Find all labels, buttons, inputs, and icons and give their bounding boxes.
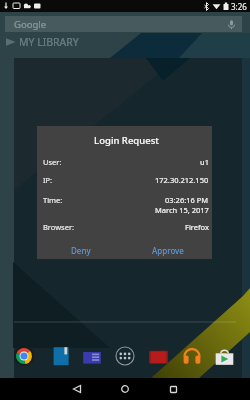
other: Voice search bbox=[226, 19, 237, 30]
staticText: IP: bbox=[43, 175, 53, 185]
staticText: Login Request bbox=[39, 134, 214, 147]
staticText: User: bbox=[43, 157, 62, 167]
staticText: 172.30.212.150 bbox=[155, 175, 209, 185]
staticText: Approve bbox=[152, 245, 184, 256]
button[interactable]: Play Store bbox=[214, 347, 235, 368]
staticText: Browser: bbox=[43, 222, 75, 232]
button[interactable]: Play Books bbox=[52, 346, 72, 366]
staticText: Deny bbox=[71, 245, 91, 256]
staticText: MY LIBRARY bbox=[19, 35, 79, 49]
button[interactable]: Gmail bbox=[82, 348, 102, 368]
staticText: 03:26:16 PM bbox=[165, 195, 209, 205]
button[interactable]: Chrome bbox=[14, 346, 34, 366]
button[interactable]: Back bbox=[53, 378, 101, 400]
button[interactable]: Google bbox=[5, 16, 242, 32]
button[interactable]: Play Movies bbox=[148, 348, 169, 369]
button[interactable]: Recents bbox=[149, 378, 197, 400]
staticText: Time: bbox=[43, 195, 63, 205]
staticText: Firefox bbox=[185, 222, 209, 232]
button[interactable]: Deny bbox=[37, 241, 124, 259]
staticText: u1 bbox=[200, 157, 209, 167]
button[interactable]: Approve bbox=[124, 241, 212, 259]
button[interactable]: Play Music bbox=[182, 347, 202, 367]
button[interactable]: MY LIBRARY bbox=[5, 35, 79, 49]
button[interactable]: Home bbox=[101, 378, 149, 400]
button[interactable]: Apps bbox=[115, 346, 135, 366]
staticText: March 15, 2017 bbox=[155, 205, 209, 215]
staticText: 3:26 bbox=[231, 1, 247, 12]
staticText: Google bbox=[14, 18, 47, 31]
